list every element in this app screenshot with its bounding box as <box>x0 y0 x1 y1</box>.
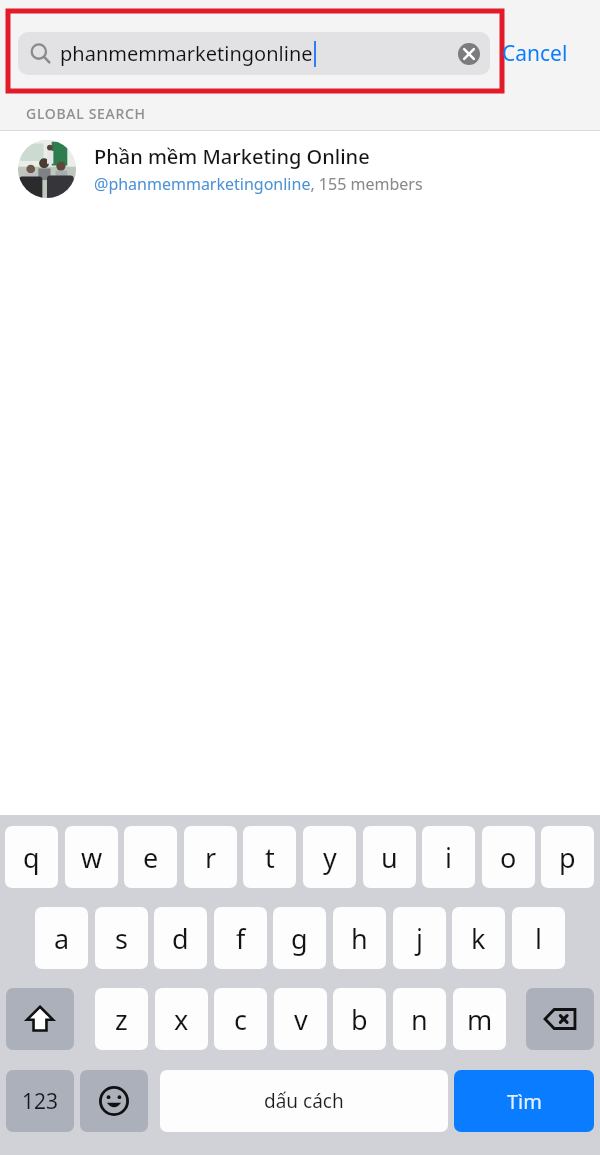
button[interactable]: m <box>453 988 506 1050</box>
staticText: Cancel <box>502 39 568 68</box>
button[interactable]: e <box>124 826 177 888</box>
button[interactable]: Clear text <box>452 37 486 71</box>
staticText: 123 <box>22 1087 59 1116</box>
button[interactable]: dấu cách <box>160 1070 448 1132</box>
staticText: i <box>445 839 452 876</box>
button[interactable]: u <box>363 826 416 888</box>
staticText: j <box>416 920 423 957</box>
staticText: n <box>411 1001 428 1038</box>
button[interactable]: Cancel <box>502 30 596 76</box>
staticText: e <box>143 839 159 876</box>
button[interactable]: i <box>422 826 475 888</box>
staticText: k <box>471 920 486 957</box>
staticText: r <box>205 839 217 876</box>
button[interactable]: q <box>5 826 58 888</box>
button[interactable]: f <box>214 907 267 969</box>
button[interactable]: r <box>184 826 237 888</box>
staticText: Phần mềm Marketing Online <box>94 143 370 170</box>
button[interactable]: k <box>452 907 505 969</box>
staticText: x <box>174 1001 189 1038</box>
button[interactable]: y <box>303 826 356 888</box>
button[interactable]: phanmemmarketingonline <box>18 32 490 75</box>
staticText: c <box>234 1001 247 1038</box>
button[interactable]: w <box>65 826 118 888</box>
staticText: y <box>323 839 337 876</box>
staticText: s <box>115 920 128 957</box>
staticText: l <box>535 920 542 957</box>
staticText: m <box>467 1001 493 1038</box>
button[interactable]: p <box>541 826 594 888</box>
staticText: Tìm <box>507 1088 542 1115</box>
staticText: g <box>291 920 308 957</box>
staticText: w <box>81 839 103 876</box>
staticText: a <box>54 920 70 957</box>
button[interactable]: o <box>482 826 535 888</box>
button[interactable]: n <box>393 988 446 1050</box>
button[interactable]: x <box>155 988 208 1050</box>
button[interactable]: d <box>154 907 207 969</box>
staticText: @phanmemmarketingonline, 155 members <box>94 173 423 195</box>
button[interactable]: Numbers <box>6 1070 74 1132</box>
button[interactable]: b <box>333 988 386 1050</box>
button[interactable]: j <box>393 907 446 969</box>
staticText: h <box>351 920 368 957</box>
staticText: o <box>500 839 517 876</box>
staticText: t <box>265 839 275 876</box>
button[interactable]: l <box>512 907 565 969</box>
staticText: f <box>236 920 246 957</box>
button[interactable]: z <box>95 988 148 1050</box>
button[interactable]: Emoji <box>80 1070 148 1132</box>
staticText: u <box>381 839 398 876</box>
button[interactable]: Phần mềm Marketing Online <box>0 131 600 207</box>
staticText: GLOBAL SEARCH <box>26 104 146 123</box>
staticText: b <box>351 1001 368 1038</box>
button[interactable]: Backspace <box>526 988 594 1050</box>
button[interactable]: a <box>35 907 88 969</box>
button[interactable]: Tìm <box>454 1070 594 1132</box>
button[interactable]: v <box>274 988 327 1050</box>
staticText: dấu cách <box>264 1088 344 1114</box>
staticText: phanmemmarketingonline <box>60 40 313 67</box>
button[interactable]: c <box>214 988 267 1050</box>
button[interactable]: h <box>333 907 386 969</box>
staticText: p <box>559 839 576 876</box>
button[interactable]: Shift <box>6 988 74 1050</box>
button[interactable]: t <box>243 826 296 888</box>
button[interactable]: s <box>95 907 148 969</box>
staticText: d <box>172 920 189 957</box>
button[interactable]: g <box>273 907 326 969</box>
staticText: v <box>294 1001 308 1038</box>
staticText: z <box>115 1001 128 1038</box>
staticText: q <box>23 839 40 876</box>
